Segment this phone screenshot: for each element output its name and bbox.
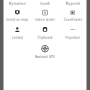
- button[interactable]: My points: [59, 2, 87, 5]
- button[interactable]: Search: [31, 2, 59, 5]
- button[interactable]: Screen center: [31, 10, 59, 22]
- button[interactable]: My location: [3, 2, 31, 5]
- staticText: My points: [66, 2, 80, 5]
- button[interactable]: Contact: [3, 27, 31, 40]
- staticText: Clipboard: [37, 36, 52, 40]
- staticText: My location: [9, 2, 26, 5]
- staticText: Screen center: [35, 18, 55, 22]
- staticText: National GPS: [35, 55, 55, 59]
- staticText: Select on map: [6, 18, 28, 22]
- staticText: Contact: [12, 36, 23, 40]
- button[interactable]: Select on map: [3, 10, 31, 22]
- button[interactable]: Clipboard: [31, 27, 59, 40]
- button[interactable]: Projection: [59, 27, 87, 40]
- staticText: Projection: [65, 36, 80, 40]
- button[interactable]: National GPS: [31, 45, 59, 59]
- staticText: Coordinates: [64, 18, 82, 22]
- button[interactable]: Coordinates: [59, 10, 87, 22]
- staticText: Search: [40, 2, 50, 5]
